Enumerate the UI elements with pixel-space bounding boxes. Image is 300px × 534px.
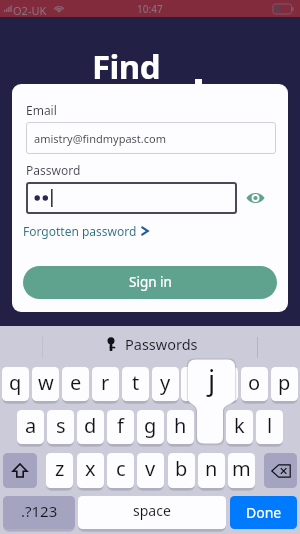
button[interactable]: Passwords	[106, 334, 198, 354]
button[interactable]: Sign in	[23, 266, 277, 299]
button[interactable]: o	[241, 367, 268, 401]
button[interactable]: b	[168, 453, 195, 488]
button[interactable]: Done	[230, 496, 297, 529]
staticText: a	[25, 412, 37, 439]
button[interactable]: z	[46, 453, 73, 488]
button[interactable]: t	[122, 367, 149, 401]
button[interactable]: a	[17, 410, 44, 444]
button[interactable]: .?123	[3, 496, 75, 529]
staticText: amistry@findmypast.com	[34, 131, 166, 146]
button[interactable]: k	[226, 410, 253, 444]
button[interactable]: w	[32, 367, 59, 401]
staticText: l	[267, 412, 273, 439]
staticText: j	[208, 360, 216, 398]
staticText: q	[9, 369, 22, 396]
staticText: space	[133, 501, 171, 520]
button[interactable]: r	[92, 367, 119, 401]
button[interactable]: Forgotten password	[23, 223, 149, 239]
staticText: g	[144, 412, 157, 439]
staticText: d	[84, 412, 97, 439]
staticText: Passwords	[125, 334, 198, 354]
staticText: r	[101, 369, 110, 396]
staticText: .?123	[21, 501, 58, 521]
button[interactable]: e	[62, 367, 89, 401]
button[interactable]: space	[78, 496, 226, 529]
button[interactable]: amistry@findmypast.com	[26, 122, 276, 154]
staticText: e	[70, 369, 82, 396]
button[interactable]: Show password	[244, 188, 266, 208]
staticText: Sign in	[129, 273, 172, 291]
staticText: m	[232, 455, 251, 482]
staticText: Find	[92, 44, 160, 89]
staticText: Email	[26, 102, 57, 118]
staticText: z	[55, 455, 65, 482]
staticText: k	[234, 412, 245, 439]
button[interactable]: m	[228, 453, 255, 488]
button[interactable]: Backspace	[264, 453, 297, 488]
button[interactable]: q	[2, 367, 29, 401]
staticText: t	[132, 369, 140, 396]
staticText: v	[145, 455, 156, 482]
button[interactable]: f	[107, 410, 134, 444]
button[interactable]: c	[107, 453, 134, 488]
button[interactable]: y	[152, 367, 179, 401]
staticText: b	[175, 455, 188, 482]
staticText: O2-UK	[13, 3, 47, 18]
button[interactable]: i	[211, 367, 238, 401]
button[interactable]	[26, 182, 237, 214]
staticText: Password	[26, 162, 81, 178]
staticText: n	[205, 455, 218, 482]
button[interactable]: d	[77, 410, 104, 444]
button[interactable]: g	[137, 410, 164, 444]
staticText: w	[38, 369, 54, 396]
staticText: s	[56, 412, 66, 439]
button[interactable]: l	[256, 410, 283, 444]
staticText: x	[85, 455, 96, 482]
staticText: y	[160, 369, 171, 396]
button[interactable]: n	[198, 453, 225, 488]
button[interactable]: p	[271, 367, 298, 401]
button[interactable]: Shift	[3, 453, 37, 488]
button[interactable]: s	[47, 410, 74, 444]
staticText: h	[174, 412, 187, 439]
button[interactable]: u	[181, 367, 208, 401]
staticText: 10:47	[137, 2, 163, 16]
staticText: p	[278, 369, 291, 396]
staticText: f	[117, 412, 124, 439]
staticText: c	[116, 455, 126, 482]
staticText: Forgotten password	[23, 223, 137, 239]
button[interactable]: x	[77, 453, 104, 488]
button[interactable]: v	[137, 453, 164, 488]
button[interactable]: h	[167, 410, 194, 444]
staticText: Done	[246, 503, 282, 522]
staticText: o	[248, 369, 261, 396]
